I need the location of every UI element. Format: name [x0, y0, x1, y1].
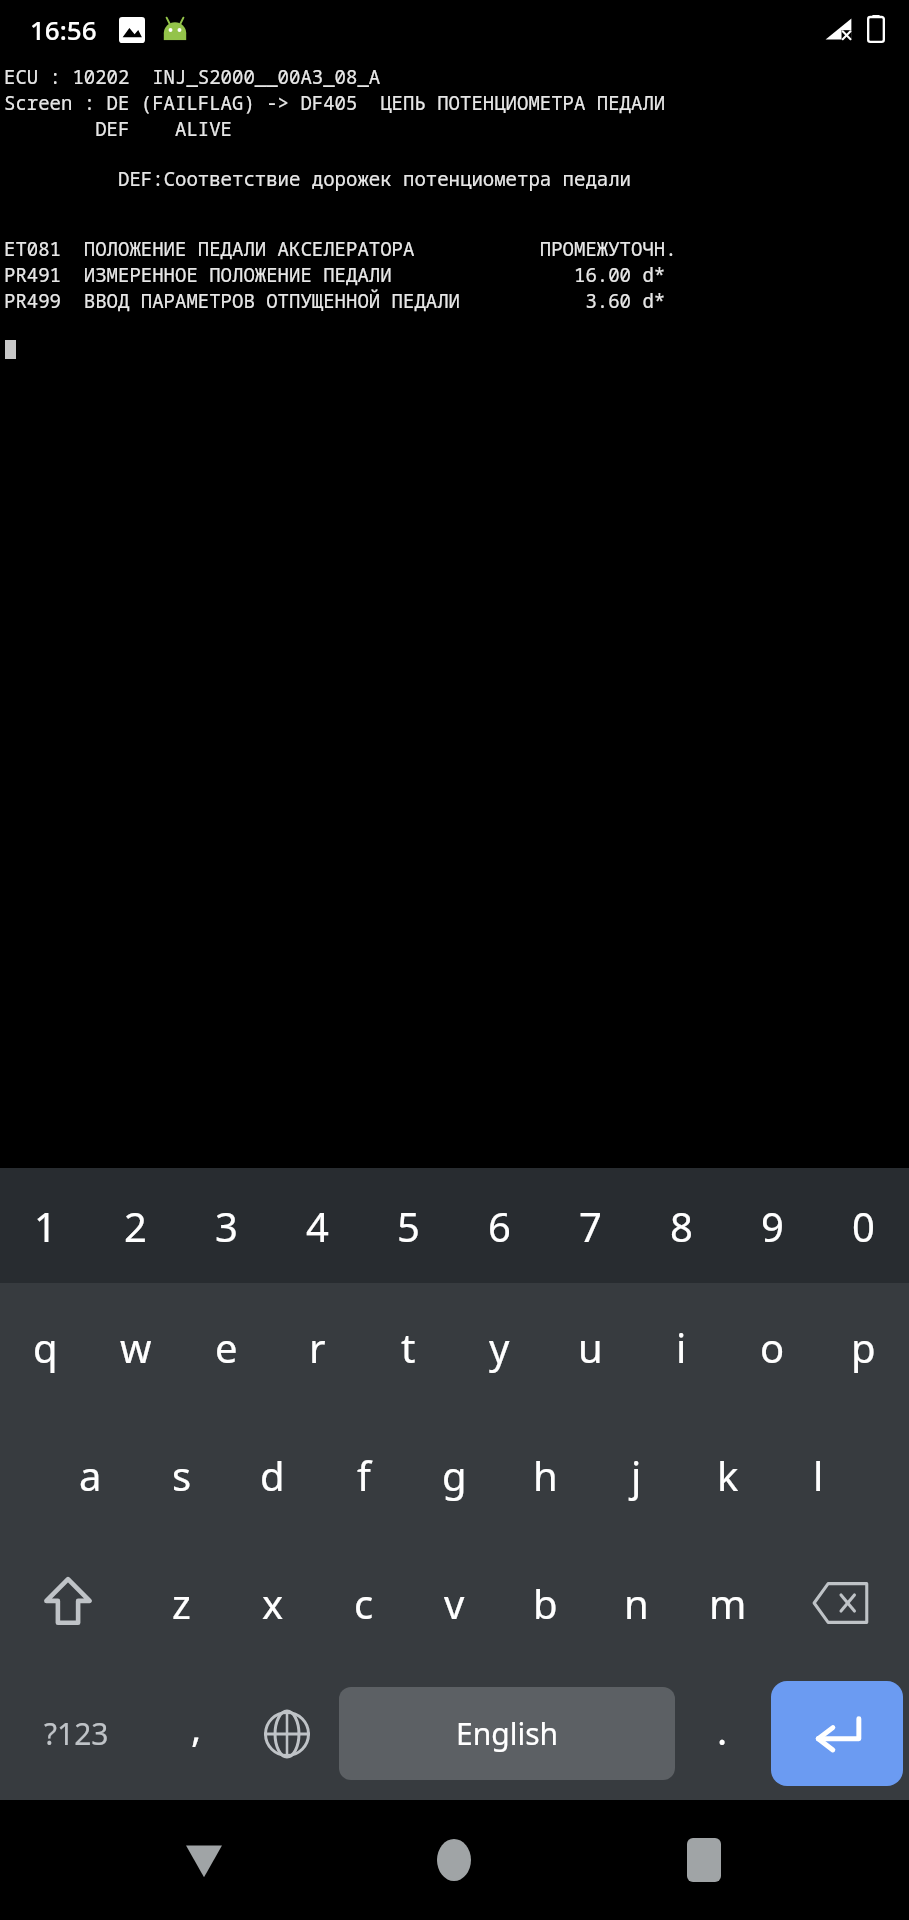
- button[interactable]: ?123: [0, 1667, 153, 1800]
- button[interactable]: Back: [159, 1815, 249, 1905]
- button[interactable]: b: [500, 1539, 591, 1667]
- button[interactable]: q: [0, 1283, 90, 1411]
- staticText: PR499 ВВОД ПАРАМЕТРОВ ОТПУЩЕННОЙ ПЕДАЛИ …: [4, 288, 666, 314]
- staticText: v: [444, 1576, 465, 1630]
- staticText: u: [578, 1320, 603, 1374]
- button[interactable]: 6: [454, 1168, 545, 1283]
- staticText: 4: [306, 1199, 329, 1253]
- button[interactable]: j: [591, 1411, 682, 1539]
- staticText: n: [624, 1576, 649, 1630]
- staticText: c: [354, 1576, 374, 1630]
- button[interactable]: f: [318, 1411, 409, 1539]
- button[interactable]: x: [227, 1539, 318, 1667]
- staticText: k: [717, 1448, 739, 1502]
- staticText: l: [813, 1448, 824, 1502]
- button[interactable]: v: [409, 1539, 500, 1667]
- staticText: ?123: [44, 1713, 109, 1754]
- button[interactable]: d: [227, 1411, 318, 1539]
- staticText: 0: [852, 1199, 875, 1253]
- staticText: English: [456, 1713, 559, 1754]
- button[interactable]: s: [136, 1411, 227, 1539]
- staticText: Screen : DE (FAILFLAG) -> DF405 ЦЕПЬ ПОТ…: [4, 90, 666, 116]
- button[interactable]: r: [272, 1283, 363, 1411]
- button[interactable]: .: [679, 1667, 765, 1800]
- button[interactable]: y: [454, 1283, 545, 1411]
- staticText: z: [172, 1576, 191, 1630]
- button[interactable]: c: [318, 1539, 409, 1667]
- staticText: ECU : 10202 INJ_S2000__00A3_08_A: [4, 64, 381, 90]
- button[interactable]: Shift: [0, 1539, 136, 1667]
- staticText: m: [709, 1576, 747, 1630]
- staticText: 1: [34, 1199, 57, 1253]
- button[interactable]: p: [818, 1283, 909, 1411]
- button[interactable]: u: [545, 1283, 636, 1411]
- staticText: f: [357, 1448, 371, 1502]
- button[interactable]: 2: [90, 1168, 181, 1283]
- button[interactable]: w: [90, 1283, 181, 1411]
- staticText: b: [533, 1576, 558, 1630]
- button[interactable]: 3: [181, 1168, 272, 1283]
- staticText: 2: [124, 1199, 147, 1253]
- staticText: x: [262, 1576, 284, 1630]
- button[interactable]: Change language: [239, 1667, 335, 1800]
- button[interactable]: 1: [0, 1168, 90, 1283]
- button[interactable]: o: [727, 1283, 818, 1411]
- staticText: 3: [215, 1199, 238, 1253]
- staticText: ,: [191, 1701, 202, 1753]
- staticText: .: [717, 1704, 728, 1756]
- button[interactable]: 7: [545, 1168, 636, 1283]
- staticText: d: [260, 1448, 285, 1502]
- button[interactable]: 9: [727, 1168, 818, 1283]
- button[interactable]: z: [136, 1539, 227, 1667]
- staticText: ET081 ПОЛОЖЕНИЕ ПЕДАЛИ АКСЕЛЕРАТОРА ПРОМ…: [4, 236, 677, 262]
- button[interactable]: English: [339, 1687, 675, 1780]
- staticText: y: [489, 1320, 510, 1374]
- button[interactable]: 0: [818, 1168, 909, 1283]
- staticText: w: [120, 1320, 152, 1374]
- button[interactable]: h: [500, 1411, 591, 1539]
- staticText: i: [676, 1320, 687, 1374]
- button[interactable]: 4: [272, 1168, 363, 1283]
- button[interactable]: e: [181, 1283, 272, 1411]
- staticText: r: [309, 1320, 326, 1374]
- staticText: 5: [397, 1199, 420, 1253]
- staticText: DEF ALIVE: [4, 116, 233, 142]
- staticText: 9: [761, 1199, 784, 1253]
- staticText: DEF:Соответствие дорожек потенциометра п…: [4, 166, 632, 192]
- button[interactable]: 8: [636, 1168, 727, 1283]
- staticText: a: [79, 1448, 102, 1502]
- button[interactable]: ,: [153, 1667, 239, 1800]
- button[interactable]: m: [682, 1539, 773, 1667]
- staticText: o: [760, 1320, 785, 1374]
- button[interactable]: g: [409, 1411, 500, 1539]
- staticText: p: [851, 1320, 876, 1374]
- button[interactable]: l: [773, 1411, 864, 1539]
- staticText: h: [533, 1448, 558, 1502]
- staticText: s: [172, 1448, 192, 1502]
- button[interactable]: n: [591, 1539, 682, 1667]
- staticText: 7: [579, 1199, 602, 1253]
- staticText: j: [631, 1448, 642, 1502]
- staticText: 8: [670, 1199, 693, 1253]
- staticText: g: [442, 1448, 467, 1502]
- staticText: e: [215, 1320, 238, 1374]
- button[interactable]: Home: [409, 1815, 499, 1905]
- button[interactable]: Backspace: [773, 1539, 909, 1667]
- button[interactable]: 5: [363, 1168, 454, 1283]
- button[interactable]: Recent apps: [659, 1815, 749, 1905]
- button[interactable]: t: [363, 1283, 454, 1411]
- staticText: 16:56: [30, 12, 97, 47]
- staticText: t: [401, 1320, 416, 1374]
- staticText: PR491 ИЗМЕРЕННОЕ ПОЛОЖЕНИЕ ПЕДАЛИ 16.00 …: [4, 262, 666, 288]
- button[interactable]: a: [45, 1411, 136, 1539]
- staticText: q: [33, 1320, 58, 1374]
- button[interactable]: i: [636, 1283, 727, 1411]
- button[interactable]: Enter: [771, 1681, 903, 1786]
- staticText: 6: [488, 1199, 511, 1253]
- button[interactable]: k: [682, 1411, 773, 1539]
